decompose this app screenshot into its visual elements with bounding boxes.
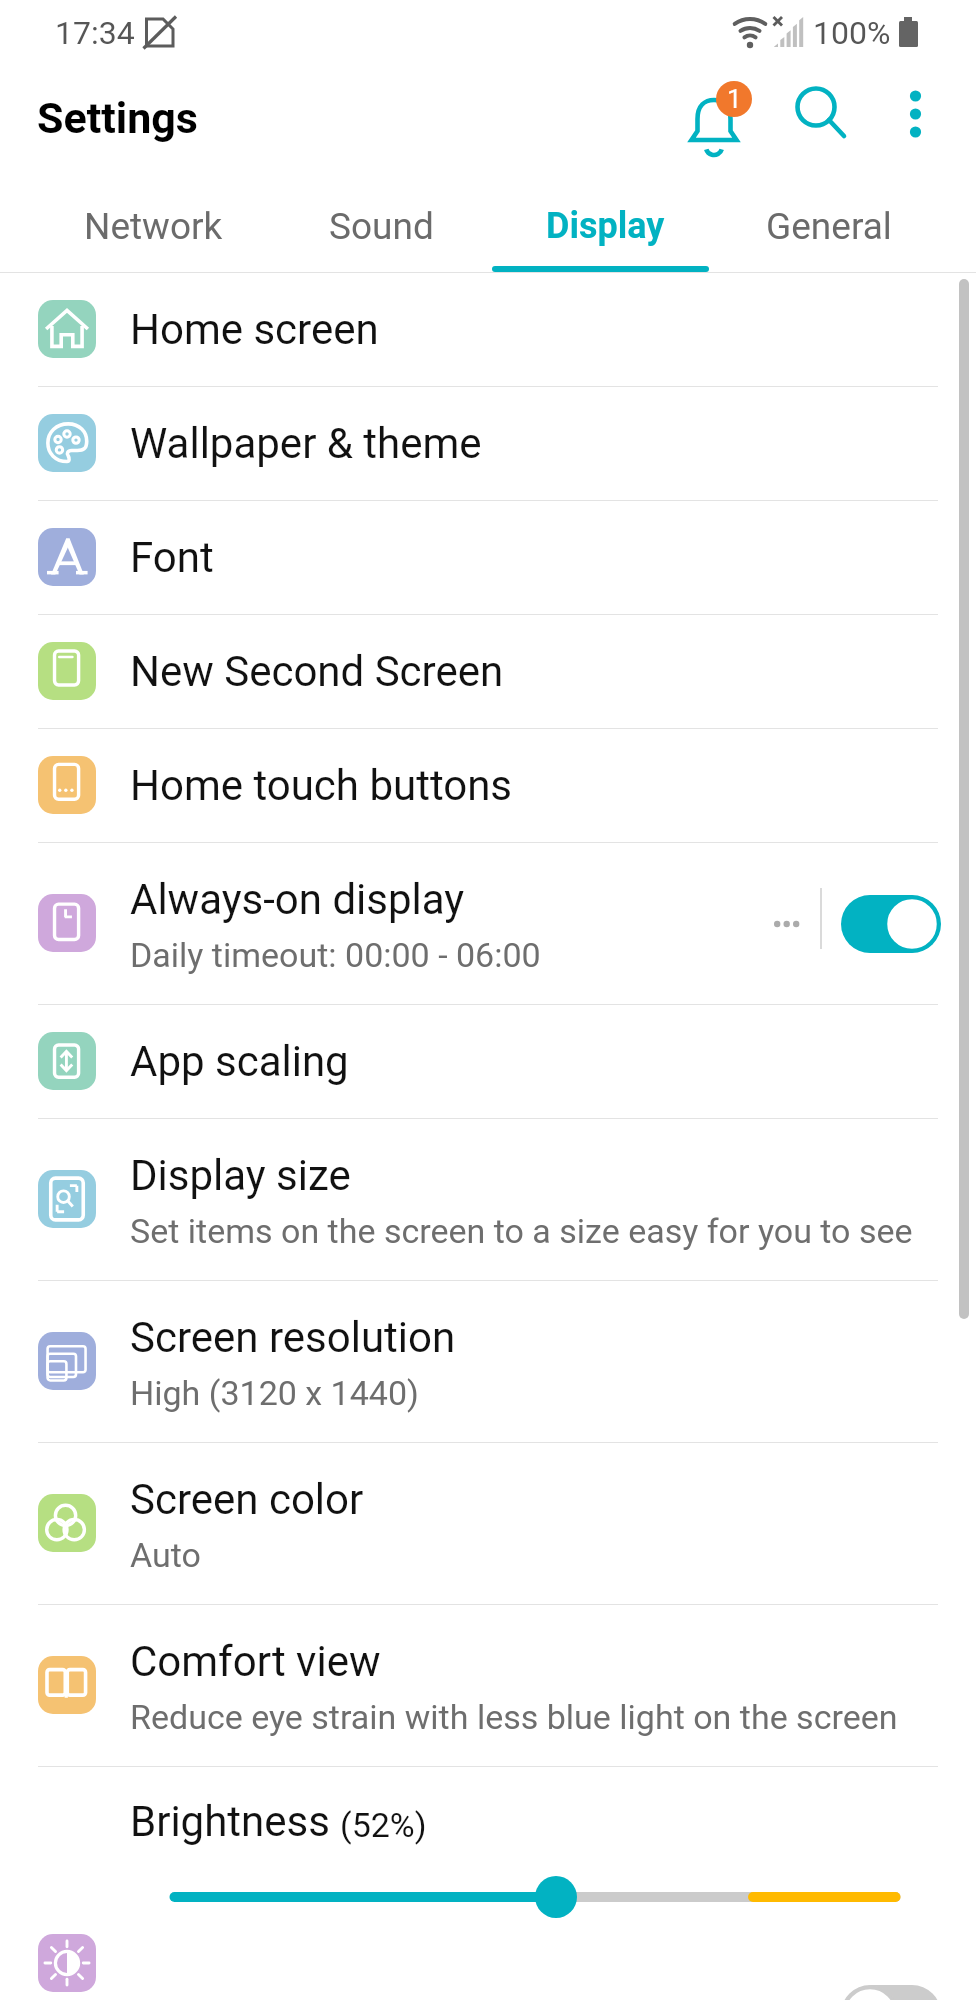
button[interactable]: Options bbox=[752, 889, 818, 959]
staticText: Home screen bbox=[130, 305, 379, 354]
staticText: Comfort view bbox=[130, 1637, 381, 1686]
staticText: Auto bbox=[130, 1535, 201, 1575]
button[interactable]: Search bbox=[770, 83, 866, 167]
staticText: (52%) bbox=[340, 1805, 427, 1845]
staticText: Font bbox=[130, 533, 214, 582]
button[interactable]: Sound bbox=[268, 180, 494, 272]
button[interactable]: Screen resolution bbox=[0, 1281, 976, 1442]
staticText: Reduce eye strain with less blue light o… bbox=[130, 1697, 898, 1737]
button[interactable]: Toggle always-on display bbox=[836, 884, 946, 964]
button[interactable]: Network bbox=[40, 180, 266, 272]
button[interactable]: Display size bbox=[0, 1119, 976, 1280]
staticText: Sound bbox=[329, 205, 434, 248]
button[interactable]: App scaling bbox=[0, 1005, 976, 1118]
button[interactable]: Notifications bbox=[668, 98, 764, 182]
staticText: Settings bbox=[37, 93, 198, 143]
staticText: App scaling bbox=[130, 1037, 349, 1086]
staticText: Always-on display bbox=[130, 875, 465, 924]
button[interactable]: Display bbox=[492, 180, 718, 272]
button[interactable]: Font bbox=[0, 501, 976, 614]
staticText: New Second Screen bbox=[130, 647, 504, 696]
button[interactable]: Wallpaper & theme bbox=[0, 387, 976, 500]
staticText: 1 bbox=[727, 84, 742, 114]
staticText: Screen resolution bbox=[130, 1313, 456, 1362]
staticText: 17:34 bbox=[55, 14, 135, 52]
button[interactable]: New Second Screen bbox=[0, 615, 976, 728]
staticText: High (3120 x 1440) bbox=[130, 1373, 419, 1413]
button[interactable]: Comfort view bbox=[0, 1605, 976, 1766]
button[interactable]: Auto bbox=[0, 1906, 976, 2000]
staticText: Display bbox=[546, 205, 665, 247]
button[interactable]: Toggle auto brightness bbox=[836, 1980, 946, 2000]
button[interactable]: Home touch buttons bbox=[0, 729, 976, 842]
button[interactable]: General bbox=[716, 180, 942, 272]
staticText: Wallpaper & theme bbox=[130, 419, 482, 468]
staticText: Daily timeout: 00:00 - 06:00 bbox=[130, 935, 541, 975]
staticText: Home touch buttons bbox=[130, 761, 513, 810]
staticText: Network bbox=[84, 205, 223, 248]
staticText: Set items on the screen to a size easy f… bbox=[130, 1211, 913, 1251]
button[interactable]: Home screen bbox=[0, 273, 976, 386]
staticText: General bbox=[766, 205, 892, 248]
staticText: 100% bbox=[813, 14, 891, 52]
staticText: Screen color bbox=[130, 1475, 364, 1524]
staticText: Brightness bbox=[130, 1797, 330, 1846]
button[interactable]: Always-on display bbox=[0, 843, 976, 1004]
button[interactable]: More options bbox=[878, 83, 952, 167]
staticText: Display size bbox=[130, 1151, 351, 1200]
button[interactable]: Screen color bbox=[0, 1443, 976, 1604]
